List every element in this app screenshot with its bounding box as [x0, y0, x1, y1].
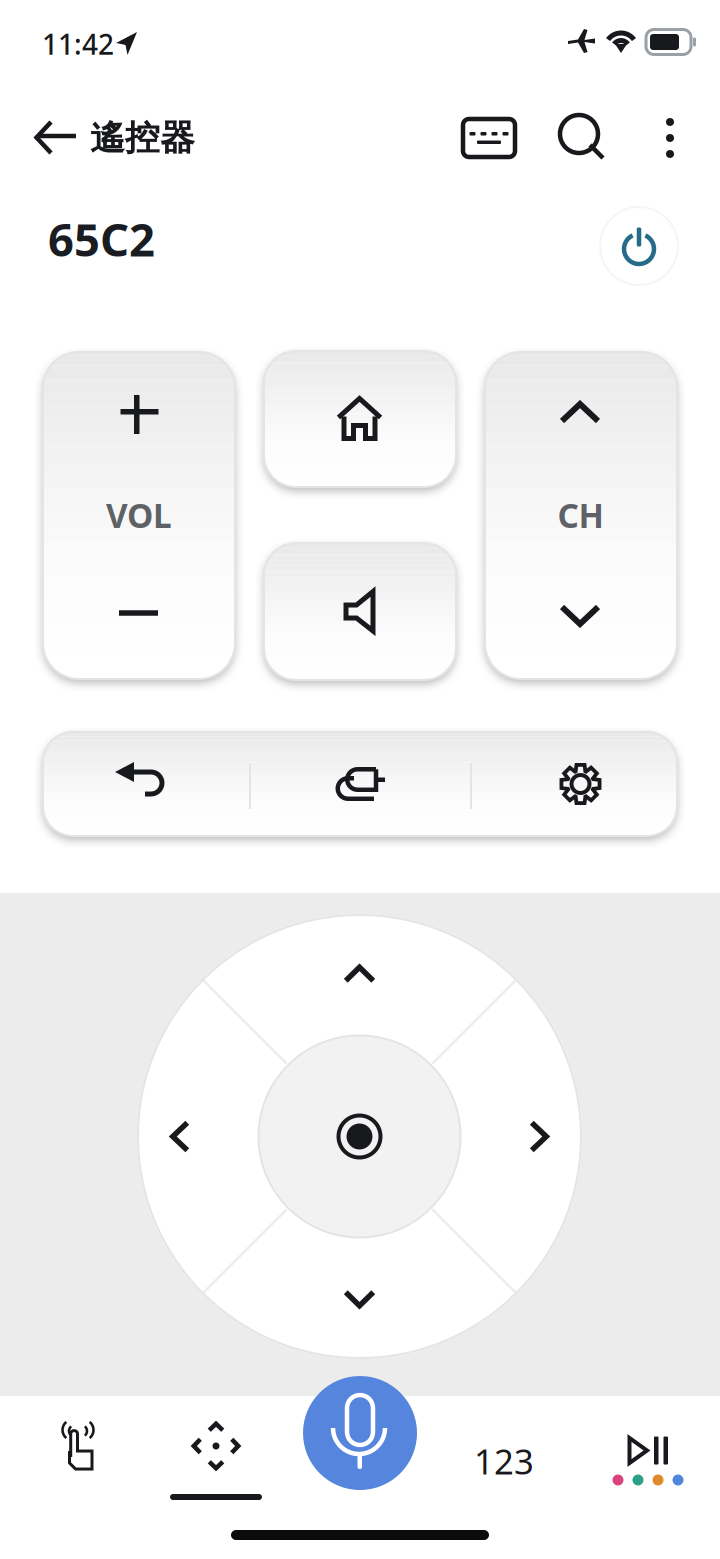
button[interactable]: Input source [251, 732, 470, 836]
button[interactable]: 遙控器 [90, 108, 290, 168]
button[interactable]: 123 [432, 1396, 576, 1526]
button[interactable]: Settings [478, 732, 683, 836]
button[interactable]: Voice search [303, 1376, 417, 1490]
button[interactable]: Keyboard [459, 108, 519, 168]
button[interactable]: Channel [485, 352, 677, 679]
button[interactable]: Touchpad [0, 1396, 144, 1526]
button[interactable]: Search [553, 108, 613, 168]
button[interactable]: Back [28, 108, 88, 168]
staticText: 123 [474, 1438, 534, 1484]
staticText: VOL [106, 493, 172, 537]
button[interactable]: Back [38, 731, 244, 835]
staticText: 11:42 [42, 25, 114, 63]
button[interactable]: Direction pad [137, 914, 582, 1359]
button[interactable]: More options [640, 108, 700, 168]
button[interactable]: Volume [43, 352, 235, 679]
button[interactable]: Media [576, 1396, 720, 1526]
button[interactable]: Power [600, 207, 678, 285]
button[interactable]: D-pad [144, 1396, 288, 1526]
button[interactable]: Home [264, 351, 456, 487]
staticText: CH [557, 493, 604, 537]
staticText: 遙控器 [90, 117, 195, 159]
staticText: 65C2 [48, 209, 155, 269]
button[interactable]: Mute [264, 543, 456, 680]
